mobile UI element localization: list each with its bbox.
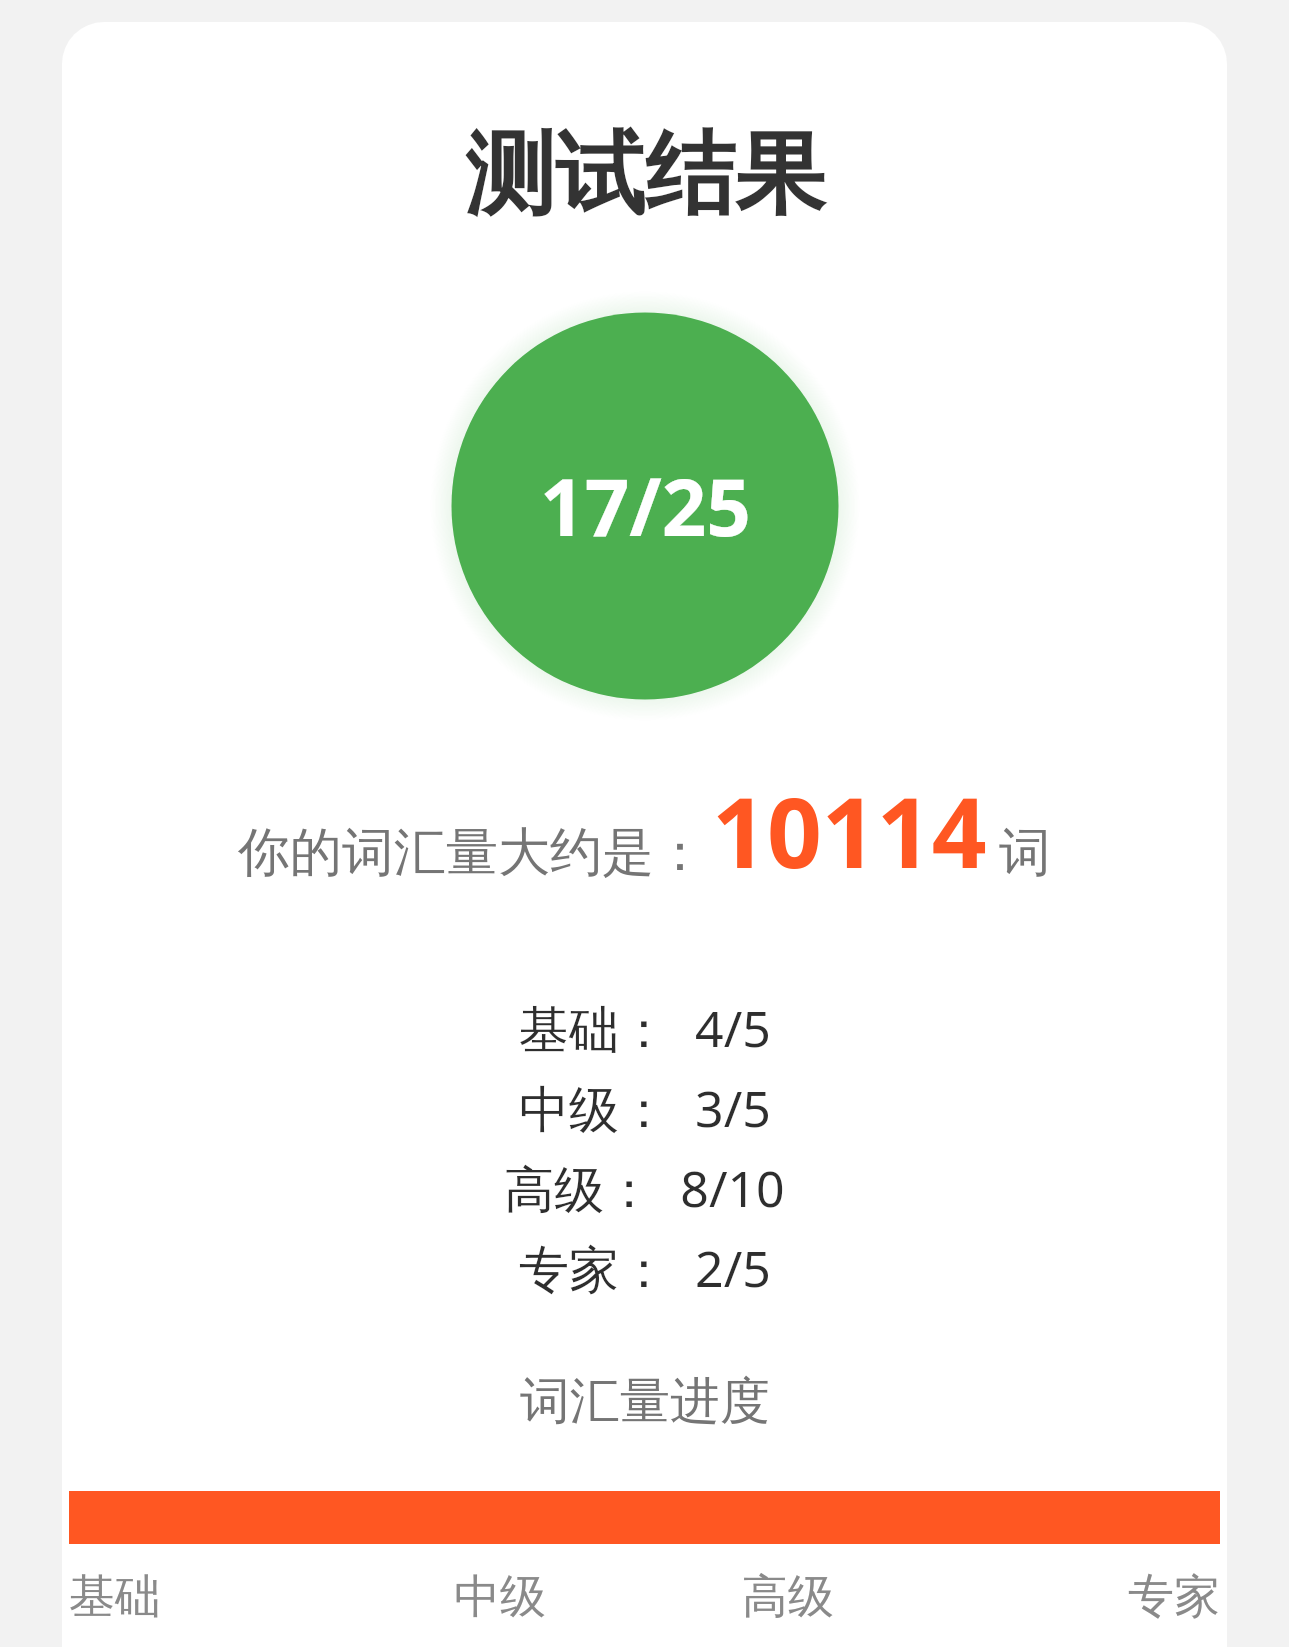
button[interactable]: 专家： 2/5 [62,1228,1227,1308]
staticText: 17/25 [540,453,751,559]
staticText: 基础： 4/5 [519,994,771,1062]
button[interactable]: 高级 [644,1568,932,1626]
staticText: 专家 [1128,1568,1220,1626]
staticText: 高级 [742,1568,834,1626]
staticText: 中级 [454,1568,546,1626]
staticText: 词汇量进度 [520,1370,770,1433]
staticText: 10114 [712,765,987,896]
staticText: 测试结果 [465,118,825,231]
button[interactable]: 高级： 8/10 [62,1148,1227,1228]
button[interactable]: 基础 [69,1568,356,1626]
button[interactable]: 基础： 4/5 [62,988,1227,1068]
other: 测试得分 17/25 [430,291,860,721]
staticText: 高级： 8/10 [504,1154,785,1222]
staticText: 你的词汇量大约是： [238,820,706,886]
staticText: 基础 [69,1568,161,1626]
button[interactable]: 中级 [356,1568,644,1626]
button[interactable]: 专家 [932,1568,1220,1626]
staticText: 中级： 3/5 [519,1074,771,1142]
button[interactable]: 中级： 3/5 [62,1068,1227,1148]
staticText: 词 [999,820,1051,886]
staticText: 专家： 2/5 [519,1234,771,1302]
